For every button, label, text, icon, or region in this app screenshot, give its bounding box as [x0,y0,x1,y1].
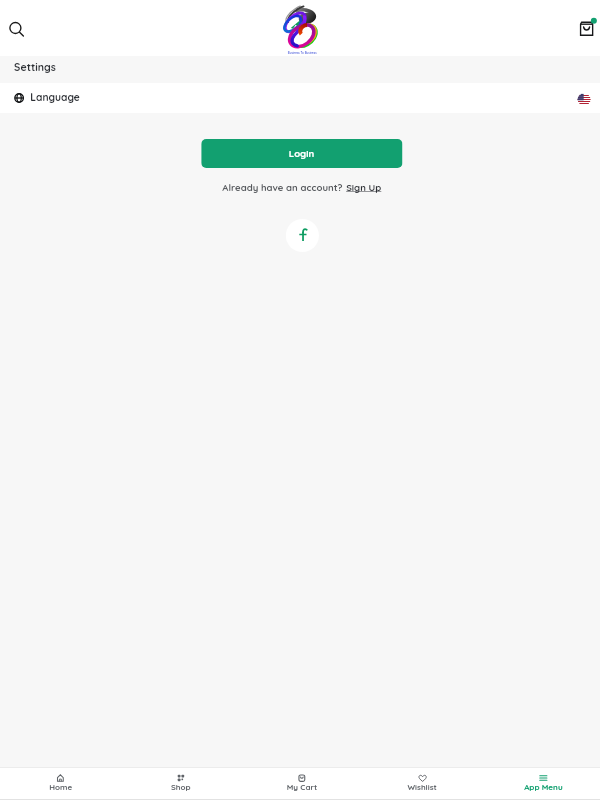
staticText: Settings [14,60,56,73]
button[interactable]: Search [4,15,30,41]
button[interactable]: B2B logo [283,4,321,54]
button[interactable]: Cart [578,15,600,41]
staticText: Business To Business [288,51,317,55]
staticText: App Menu [524,782,563,792]
button[interactable]: Wishlist [362,768,483,799]
button[interactable]: Login [201,139,402,168]
staticText: My Cart [287,782,318,792]
staticText: Home [49,782,72,792]
staticText: Login [289,147,315,159]
button[interactable]: App Menu [483,768,600,799]
button[interactable]: My Cart [241,768,362,799]
button[interactable]: Home [0,768,121,799]
button[interactable]: Language [0,83,600,113]
staticText: Wishlist [407,782,438,792]
button[interactable]: Sign in with Facebook [286,219,319,252]
button[interactable]: Shop [121,768,241,799]
staticText: Already have an account? [222,181,346,193]
button[interactable]: Sign Up [346,181,381,193]
staticText: Shop [171,782,191,792]
staticText: Language [30,91,80,104]
